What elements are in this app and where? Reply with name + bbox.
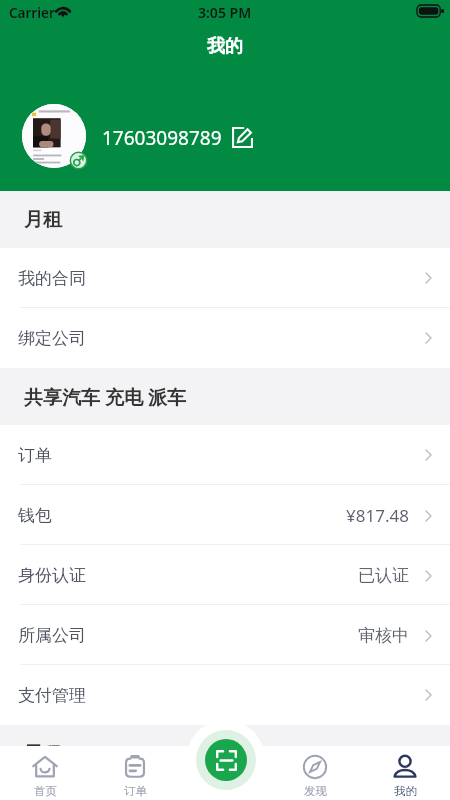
button[interactable]: 扫一扫 bbox=[205, 739, 247, 781]
button[interactable]: 绑定公司 bbox=[0, 308, 450, 368]
staticText: 我的 bbox=[207, 35, 243, 58]
button[interactable]: 订单 bbox=[90, 746, 180, 800]
staticText: 已认证 bbox=[358, 565, 409, 586]
button[interactable]: 钱包 bbox=[0, 485, 450, 545]
staticText: 17603098789 bbox=[102, 125, 222, 151]
staticText: 我的合同 bbox=[18, 268, 86, 289]
staticText: 钱包 bbox=[18, 505, 52, 526]
button[interactable]: 身份认证 bbox=[0, 545, 450, 605]
staticText: 我的 bbox=[394, 784, 417, 798]
staticText: ¥817.48 bbox=[346, 504, 409, 527]
button[interactable]: 所属公司 bbox=[0, 605, 450, 665]
staticText: 日租 bbox=[24, 742, 62, 766]
staticText: 首页 bbox=[34, 784, 57, 798]
staticText: 审核中 bbox=[358, 625, 409, 646]
button[interactable]: 发现 bbox=[270, 746, 360, 800]
button[interactable]: 我的合同 bbox=[0, 248, 450, 308]
button[interactable]: 订单 bbox=[0, 425, 450, 485]
staticText: 月租 bbox=[24, 208, 62, 232]
button[interactable]: 编辑资料 bbox=[228, 123, 256, 151]
staticText: 订单 bbox=[18, 445, 52, 466]
staticText: 支付管理 bbox=[18, 685, 86, 706]
button[interactable]: 我的 bbox=[360, 746, 450, 800]
staticText: 绑定公司 bbox=[18, 328, 86, 349]
staticText: 发现 bbox=[304, 784, 327, 798]
staticText: Carrier bbox=[9, 4, 55, 22]
staticText: 3:05 PM bbox=[198, 3, 252, 22]
button[interactable]: 支付管理 bbox=[0, 665, 450, 725]
staticText: 共享汽车 充电 派车 bbox=[24, 384, 186, 410]
button[interactable]: 首页 bbox=[0, 746, 90, 800]
staticText: 订单 bbox=[124, 784, 147, 798]
staticText: 身份认证 bbox=[18, 565, 86, 586]
staticText: 所属公司 bbox=[18, 625, 86, 646]
